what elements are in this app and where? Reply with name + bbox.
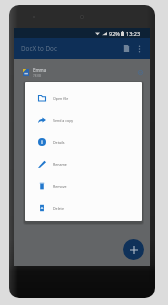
button[interactable]: More options [133,42,146,55]
staticText: Delete [53,206,64,211]
button[interactable]: Add [123,239,144,260]
staticText: 13:23 [126,30,141,37]
button[interactable]: Remove [25,175,142,197]
button[interactable]: Rename [25,153,142,175]
staticText: Rename [53,162,67,167]
staticText: Open file [53,96,69,101]
staticText: Details [53,140,65,145]
staticText: DocX to Doc [21,44,57,53]
staticText: 78 KB [33,74,42,78]
button[interactable]: Expand [135,67,145,77]
staticText: 92% [109,30,120,37]
button[interactable]: Open file [25,87,142,109]
staticText: Emma [33,67,47,73]
staticText: Send a copy [53,118,74,123]
button[interactable]: Delete [25,197,142,219]
button[interactable]: Emma [14,59,150,83]
button[interactable]: Details [25,131,142,153]
button[interactable]: Save file [120,42,133,55]
staticText: Remove [53,184,67,189]
button[interactable]: Send a copy [25,109,142,131]
